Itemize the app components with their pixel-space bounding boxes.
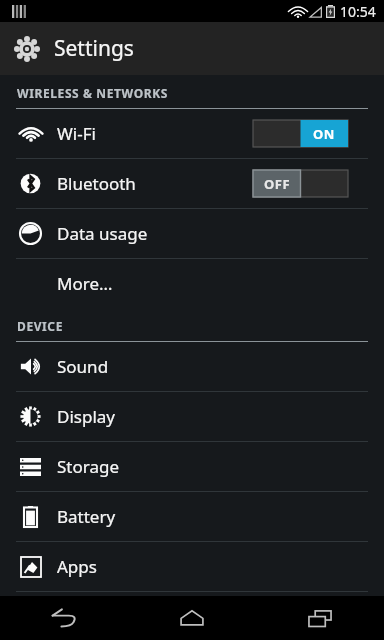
button[interactable]: Off (253, 170, 348, 197)
staticText: Wi-Fi (57, 122, 96, 145)
staticText: WIRELESS & NETWORKS (17, 85, 168, 101)
staticText: Display (57, 405, 115, 428)
staticText: DEVICE (17, 318, 63, 334)
button[interactable]: More… (0, 259, 384, 308)
staticText: Settings (54, 34, 134, 63)
button[interactable]: Sound (0, 342, 384, 391)
staticText: 10:54 (340, 2, 376, 21)
button[interactable]: Display (0, 392, 384, 441)
staticText: Bluetooth (57, 172, 136, 195)
button[interactable]: Battery (0, 492, 384, 541)
staticText: Apps (57, 555, 97, 578)
staticText: ON (313, 125, 335, 143)
button[interactable]: Recent apps (256, 596, 384, 640)
staticText: Data usage (57, 222, 148, 245)
button[interactable]: Apps (0, 542, 384, 591)
button[interactable]: Wi-Fi (0, 109, 384, 158)
button[interactable]: Back (0, 596, 128, 640)
staticText: OFF (264, 175, 291, 193)
button[interactable]: Storage (0, 442, 384, 491)
staticText: Battery (57, 505, 116, 528)
button[interactable]: Home (128, 596, 256, 640)
button[interactable]: On (253, 120, 348, 147)
button[interactable]: Bluetooth (0, 159, 384, 208)
button[interactable]: Data usage (0, 209, 384, 258)
staticText: Sound (57, 355, 109, 378)
staticText: Storage (57, 455, 120, 478)
staticText: More… (57, 272, 113, 295)
